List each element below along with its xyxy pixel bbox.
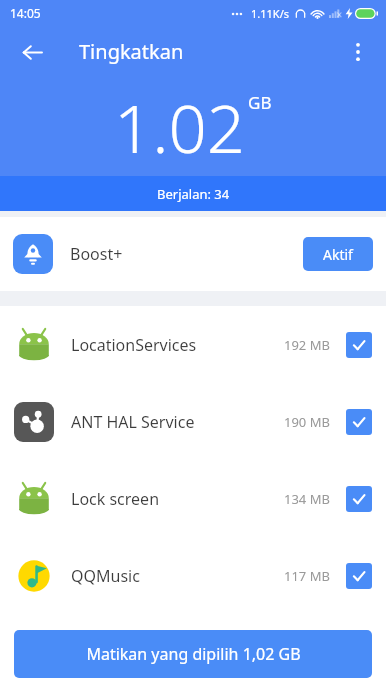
staticText: Aktif	[323, 245, 353, 264]
button[interactable]: ANT HAL Service	[0, 383, 386, 460]
button[interactable]: More options	[338, 32, 378, 72]
staticText: Lock screen	[71, 488, 160, 510]
staticText: Matikan yang dipilih 1,02 GB	[86, 643, 301, 665]
staticText: 190 MB	[284, 413, 330, 431]
staticText: LocationServices	[71, 334, 197, 356]
button[interactable]: Matikan yang dipilih 1,02 GB	[14, 630, 372, 678]
staticText: Tingkatkan	[79, 38, 184, 65]
button[interactable]: Back	[11, 31, 53, 73]
staticText: 117 MB	[284, 567, 330, 585]
staticText: Boost+	[70, 243, 123, 265]
staticText: 192 MB	[284, 336, 330, 354]
staticText: GB	[248, 91, 272, 114]
button[interactable]: Lock screen	[0, 460, 386, 537]
button[interactable]: Select LocationServices	[346, 332, 372, 358]
button[interactable]: Aktif	[303, 237, 373, 271]
button[interactable]: Select QQMusic	[346, 563, 372, 589]
button[interactable]: Select ANT HAL Service	[346, 409, 372, 435]
staticText: 14:05	[10, 5, 41, 21]
staticText: 134 MB	[284, 490, 330, 508]
button[interactable]: LocationServices	[0, 306, 386, 383]
staticText: QQMusic	[71, 565, 140, 587]
button[interactable]: Select Lock screen	[346, 486, 372, 512]
button[interactable]: QQMusic	[0, 537, 386, 614]
button[interactable]: Boost+	[0, 217, 386, 291]
staticText: 1.02	[114, 81, 246, 172]
staticText: 1.11K/s	[251, 6, 289, 21]
staticText: ANT HAL Service	[71, 411, 195, 433]
staticText: Berjalan: 34	[157, 185, 230, 203]
